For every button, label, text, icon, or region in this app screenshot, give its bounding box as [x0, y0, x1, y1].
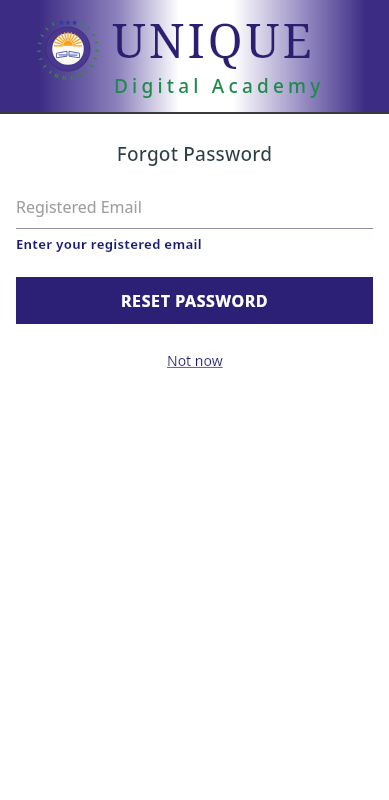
staticText: Not now: [167, 351, 223, 370]
staticText: RESET PASSWORD: [121, 290, 269, 312]
button[interactable]: Not now: [167, 351, 223, 370]
staticText: Digital Academy: [114, 73, 325, 99]
button[interactable]: Registered Email: [16, 192, 373, 222]
staticText: UNIQUE: [112, 8, 315, 72]
staticText: Registered Email: [16, 196, 142, 218]
button[interactable]: RESET PASSWORD: [16, 277, 373, 324]
staticText: Forgot Password: [0, 141, 389, 167]
staticText: Enter your registered email: [16, 235, 202, 253]
